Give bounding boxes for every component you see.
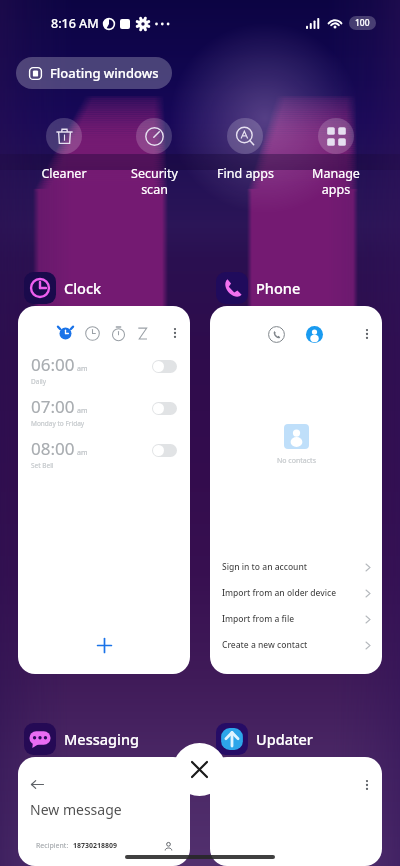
button[interactable]: Close all	[173, 743, 226, 796]
button[interactable]: Add alarm	[91, 632, 117, 658]
other: More options	[361, 778, 373, 792]
staticText: Floating windows	[50, 64, 159, 82]
other: More options	[169, 326, 181, 340]
button[interactable]: Import from an older device	[210, 580, 382, 606]
staticText: Daily	[31, 377, 47, 386]
button[interactable]	[152, 402, 177, 415]
button[interactable]: Updater	[216, 721, 313, 757]
button[interactable]: More options	[18, 306, 190, 674]
button[interactable]: Back	[18, 757, 190, 866]
staticText: Clock	[64, 278, 102, 298]
staticText: Phone	[256, 278, 301, 298]
button[interactable]: Import from a file	[210, 606, 382, 632]
button[interactable]: Clock	[24, 270, 102, 306]
button[interactable]	[152, 444, 177, 457]
staticText: Create a new contact	[222, 639, 308, 651]
staticText: Security scan	[131, 165, 178, 197]
other: Back	[31, 778, 44, 791]
button[interactable]: Manage apps	[291, 118, 381, 197]
button[interactable]: Find apps	[200, 118, 290, 182]
button[interactable]: Floating windows	[16, 57, 172, 89]
staticText: Manage apps	[312, 165, 360, 197]
staticText: New message	[30, 800, 122, 819]
staticText: Set Bell	[31, 461, 54, 470]
button[interactable]: 06:00	[18, 350, 190, 392]
staticText: Import from an older device	[222, 587, 337, 599]
button[interactable]: Phone	[216, 270, 301, 306]
staticText: 100	[355, 17, 370, 29]
staticText: Sign in to an account	[222, 561, 307, 573]
button[interactable]	[152, 360, 177, 373]
staticText: Messaging	[64, 729, 140, 749]
other: Contacts	[163, 841, 174, 852]
staticText: 06:00	[31, 353, 75, 376]
staticText: am	[77, 364, 88, 374]
staticText: 8:16 AM	[51, 15, 99, 32]
button[interactable]: 07:00	[18, 392, 190, 434]
staticText: Find apps	[217, 165, 274, 182]
staticText: Updater	[256, 729, 313, 749]
button[interactable]: Security scan	[109, 118, 199, 197]
staticText: Monday to Friday	[31, 419, 85, 428]
button[interactable]: 08:00	[18, 434, 190, 476]
button[interactable]: Messaging	[24, 721, 140, 757]
other: More options	[361, 327, 373, 341]
staticText: Import from a file	[222, 613, 295, 625]
staticText: am	[77, 406, 88, 416]
button[interactable]: Sign in to an account	[210, 554, 382, 580]
staticText: 18730218809	[73, 841, 118, 851]
staticText: 07:00	[31, 395, 75, 418]
staticText: No contacts	[277, 456, 316, 466]
button[interactable]: Create a new contact	[210, 632, 382, 658]
staticText: 08:00	[31, 437, 75, 460]
staticText: Cleaner	[41, 165, 87, 182]
button[interactable]: Cleaner	[19, 118, 109, 182]
button[interactable]: More options	[210, 306, 382, 674]
staticText: am	[77, 448, 88, 458]
staticText: Recipient:	[36, 841, 69, 851]
button[interactable]: More options	[210, 757, 382, 866]
